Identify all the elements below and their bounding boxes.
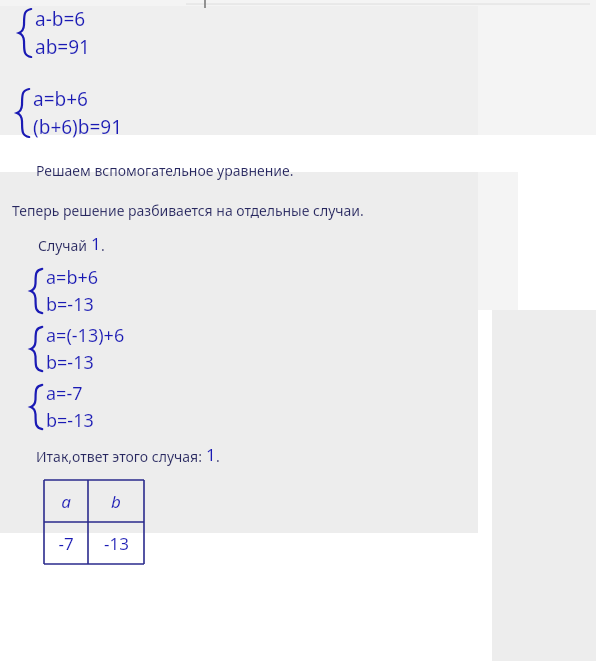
button[interactable]: Решаем вспомогательное уравнение. [0,152,596,189]
staticText: ab=91 [35,34,90,60]
staticText: . [216,447,220,466]
staticText: b=-13 [46,350,94,375]
staticText: b=-13 [46,292,94,317]
staticText: Решаем вспомогательное уравнение. [36,161,294,180]
staticText: -7 [58,532,74,555]
staticText: a=(-13)+6 [46,323,125,348]
staticText: a=b+6 [33,86,88,112]
staticText: Случай [38,236,91,255]
staticText: 1 [206,443,216,466]
staticText: b=-13 [46,408,94,433]
staticText: Итак,ответ этого случая: [36,447,206,466]
staticText: a=-7 [46,381,83,406]
staticText: b [111,490,121,513]
staticText: . [101,236,105,255]
button[interactable]: Answer table [44,480,144,564]
staticText: Теперь решение разбивается на отдельные … [12,201,364,220]
staticText: -13 [104,532,129,555]
staticText: 1 [91,232,101,255]
staticText: a=b+6 [46,265,99,290]
staticText: a-b=6 [35,6,86,32]
staticText: a [61,490,71,513]
staticText: (b+6)b=91 [33,114,123,140]
